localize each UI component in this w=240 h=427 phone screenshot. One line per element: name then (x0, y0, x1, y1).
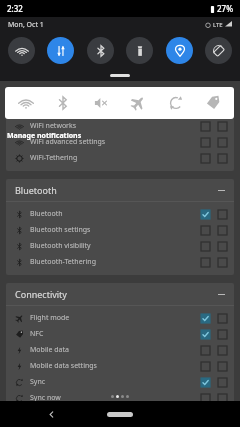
button[interactable]: WiFi networks (6, 118, 234, 134)
button[interactable]: Wi-Fi (9, 87, 43, 119)
button[interactable]: Flashlight (126, 37, 153, 64)
button[interactable]: Bluetooth (46, 87, 80, 119)
staticText: Mobile data (30, 345, 201, 355)
button[interactable] (218, 242, 227, 251)
button[interactable] (218, 362, 227, 371)
staticText: Mobile data settings (30, 361, 201, 371)
button[interactable]: Flight mode (6, 310, 234, 326)
button[interactable]: NFC (6, 326, 234, 342)
staticText: Flight mode (30, 313, 201, 323)
button[interactable]: Home (103, 407, 137, 421)
button[interactable] (201, 242, 210, 251)
staticText: 2:32 (7, 3, 23, 14)
button[interactable] (201, 378, 210, 387)
button[interactable]: Connectivity (6, 283, 234, 305)
button[interactable] (218, 346, 227, 355)
button[interactable] (201, 362, 210, 371)
button[interactable] (218, 154, 227, 163)
button[interactable] (201, 210, 210, 219)
button[interactable]: WiFi-Tethering (6, 150, 234, 166)
button[interactable] (110, 74, 130, 77)
staticText: Bluetooth (15, 184, 218, 196)
button[interactable]: Airplane mode (121, 87, 155, 119)
button[interactable] (201, 330, 210, 339)
staticText: Connectivity (15, 288, 218, 300)
button[interactable]: Sync now (6, 390, 234, 406)
button[interactable] (201, 138, 210, 147)
button[interactable]: Sync (6, 374, 234, 390)
button[interactable] (201, 226, 210, 235)
staticText: Bluetooth-Tethering (30, 257, 201, 267)
staticText: LTE (213, 21, 223, 29)
button[interactable] (218, 258, 227, 267)
button[interactable]: Bluetooth (6, 179, 234, 201)
button[interactable]: NFC (196, 87, 230, 119)
button[interactable]: WiFi advanced settings (6, 134, 234, 150)
button[interactable]: Wi-Fi (8, 37, 35, 64)
button[interactable]: Mobile data (47, 37, 74, 64)
button[interactable]: Auto rotate (205, 37, 232, 64)
button[interactable] (201, 346, 210, 355)
button[interactable] (218, 394, 227, 403)
staticText: WiFi networks (30, 121, 201, 131)
button[interactable]: Mobile data settings (6, 358, 234, 374)
staticText: WiFi advanced settings (30, 137, 201, 147)
button[interactable]: Mute (84, 87, 118, 119)
staticText: Mon, Oct 1 (8, 20, 44, 30)
button[interactable] (201, 154, 210, 163)
button[interactable] (218, 378, 227, 387)
staticText: Sync (30, 377, 201, 387)
staticText: WiFi-Tethering (30, 153, 201, 163)
button[interactable] (218, 122, 227, 131)
button[interactable]: Bluetooth (87, 37, 114, 64)
button[interactable]: Back (42, 405, 60, 423)
staticText: Sync now (30, 393, 201, 403)
button[interactable]: Bluetooth visibility (6, 238, 234, 254)
button[interactable]: Bluetooth (6, 206, 234, 222)
button[interactable]: Location (166, 37, 193, 64)
staticText: Bluetooth settings (30, 225, 201, 235)
button[interactable] (201, 314, 210, 323)
button[interactable] (218, 314, 227, 323)
button[interactable]: Bluetooth settings (6, 222, 234, 238)
staticText: 27% (217, 3, 233, 14)
staticText: Manage notifications (7, 131, 82, 141)
button[interactable] (218, 330, 227, 339)
button[interactable] (201, 258, 210, 267)
staticText: Bluetooth visibility (30, 241, 201, 251)
button[interactable] (218, 210, 227, 219)
button[interactable]: Sync (159, 87, 193, 119)
staticText: NFC (30, 329, 201, 339)
button[interactable] (218, 226, 227, 235)
button[interactable] (218, 138, 227, 147)
button[interactable]: Bluetooth-Tethering (6, 254, 234, 270)
button[interactable]: Mobile data (6, 342, 234, 358)
button[interactable] (201, 394, 210, 403)
button[interactable] (201, 122, 210, 131)
staticText: Bluetooth (30, 209, 201, 219)
